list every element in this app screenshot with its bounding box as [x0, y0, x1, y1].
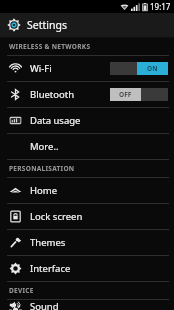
button[interactable]: Bluetooth	[0, 82, 174, 107]
staticText: More..	[30, 140, 168, 153]
staticText: Settings	[27, 18, 67, 32]
button[interactable]: Toggle on	[110, 62, 168, 75]
button[interactable]: Data usage	[0, 108, 174, 133]
staticText: Interface	[30, 262, 168, 275]
staticText: Home	[30, 184, 168, 197]
button[interactable]: Lock screen	[0, 204, 174, 229]
staticText: Wi-Fi	[30, 62, 110, 75]
staticText: Bluetooth	[30, 88, 110, 101]
staticText: PERSONALISATION	[9, 164, 75, 173]
button[interactable]: Toggle off	[110, 88, 168, 101]
button[interactable]: Sound	[0, 300, 174, 310]
button[interactable]: Home	[0, 178, 174, 203]
staticText: Lock screen	[30, 210, 168, 223]
button[interactable]: More..	[0, 134, 174, 159]
button[interactable]: Wi-Fi	[0, 56, 174, 81]
button[interactable]: Settings	[0, 13, 174, 37]
staticText: WIRELESS & NETWORKS	[9, 42, 91, 51]
button[interactable]: Interface	[0, 256, 174, 281]
staticText: 19:17	[150, 1, 171, 12]
staticText: DEVICE	[9, 286, 34, 295]
staticText: Data usage	[30, 114, 168, 127]
staticText: ON	[147, 64, 158, 73]
staticText: Themes	[30, 236, 168, 249]
staticText: Sound	[30, 300, 168, 310]
staticText: OFF	[119, 90, 132, 99]
button[interactable]: Themes	[0, 230, 174, 255]
